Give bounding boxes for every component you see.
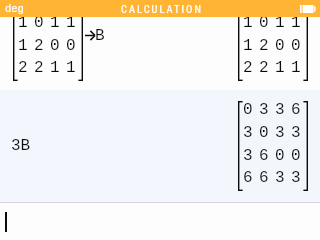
staticText: 6	[259, 169, 269, 187]
staticText: 0	[259, 124, 269, 142]
staticText: 6	[243, 169, 253, 187]
staticText: 2	[18, 59, 28, 77]
button[interactable]: 3B	[0, 90, 320, 202]
staticText: 1	[66, 17, 76, 32]
staticText: 2	[259, 59, 269, 77]
staticText: 6	[259, 147, 269, 165]
staticText: 1	[18, 17, 28, 32]
button[interactable]: deg	[5, 3, 24, 15]
staticText: 3	[243, 147, 253, 165]
staticText: 0	[291, 147, 301, 165]
staticText: 1	[291, 17, 301, 32]
staticText: 0	[66, 37, 76, 55]
button[interactable]	[0, 203, 320, 240]
staticText: 1	[66, 59, 76, 77]
staticText: 0	[275, 37, 285, 55]
staticText: 3B	[11, 137, 31, 155]
staticText: 0	[34, 17, 44, 32]
staticText: 3	[275, 169, 285, 187]
staticText: 2	[34, 59, 44, 77]
staticText: 3	[291, 169, 301, 187]
staticText: 0	[275, 147, 285, 165]
staticText: 2	[34, 37, 44, 55]
staticText: 1	[18, 37, 28, 55]
button[interactable]: Battery	[300, 5, 316, 13]
staticText: 0	[243, 101, 253, 119]
staticText: 1	[243, 37, 253, 55]
staticText: 0	[259, 17, 269, 32]
staticText: 3	[275, 124, 285, 142]
staticText: 3	[291, 124, 301, 142]
staticText: 0	[291, 37, 301, 55]
staticText: 1	[291, 59, 301, 77]
staticText: 1	[50, 59, 60, 77]
staticText: 3	[275, 101, 285, 119]
staticText: 6	[291, 101, 301, 119]
staticText: 1	[243, 17, 253, 32]
staticText: 0	[50, 37, 60, 55]
staticText: 3	[259, 101, 269, 119]
staticText: 2	[259, 37, 269, 55]
staticText: CALCULATION	[121, 3, 203, 15]
staticText: 3	[243, 124, 253, 142]
staticText: 1	[275, 59, 285, 77]
staticText: 1	[50, 17, 60, 32]
staticText: 2	[243, 59, 253, 77]
staticText: B	[95, 27, 105, 45]
button[interactable]: 0	[0, 17, 320, 90]
staticText: 1	[275, 17, 285, 32]
